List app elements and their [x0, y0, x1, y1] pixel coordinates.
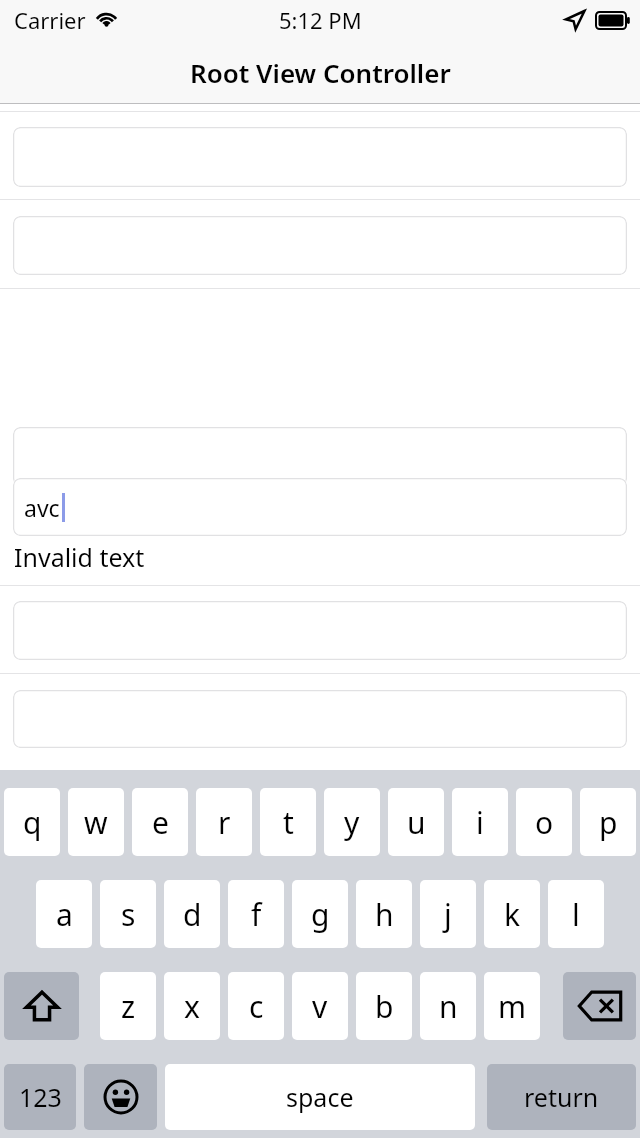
- staticText: i: [476, 802, 484, 843]
- staticText: space: [286, 1080, 354, 1114]
- button[interactable]: [13, 690, 627, 748]
- button[interactable]: r: [196, 788, 252, 856]
- button[interactable]: space: [165, 1064, 475, 1130]
- button[interactable]: [13, 216, 627, 275]
- button[interactable]: return: [487, 1064, 636, 1130]
- staticText: g: [311, 894, 330, 935]
- staticText: c: [249, 986, 264, 1027]
- button[interactable]: j: [420, 880, 476, 948]
- staticText: Root View Controller: [190, 55, 451, 90]
- staticText: 123: [19, 1080, 62, 1114]
- button[interactable]: f: [228, 880, 284, 948]
- button[interactable]: c: [228, 972, 284, 1040]
- button[interactable]: n: [420, 972, 476, 1040]
- button[interactable]: 123: [4, 1064, 76, 1130]
- staticText: d: [183, 894, 202, 935]
- staticText: v: [312, 986, 328, 1027]
- staticText: k: [504, 894, 521, 935]
- staticText: h: [375, 894, 394, 935]
- staticText: b: [375, 986, 394, 1027]
- button[interactable]: t: [260, 788, 316, 856]
- staticText: o: [535, 802, 554, 843]
- button[interactable]: [13, 601, 627, 660]
- button[interactable]: k: [484, 880, 540, 948]
- button[interactable]: m: [484, 972, 540, 1040]
- button[interactable]: w: [68, 788, 124, 856]
- button[interactable]: [13, 127, 627, 187]
- staticText: Invalid text: [14, 540, 145, 574]
- button[interactable]: avc: [13, 478, 627, 536]
- button[interactable]: y: [324, 788, 380, 856]
- button[interactable]: u: [388, 788, 444, 856]
- staticText: p: [599, 802, 618, 843]
- button[interactable]: x: [164, 972, 220, 1040]
- staticText: w: [84, 802, 108, 843]
- button[interactable]: i: [452, 788, 508, 856]
- button[interactable]: z: [100, 972, 156, 1040]
- button[interactable]: l: [548, 880, 604, 948]
- staticText: e: [152, 802, 169, 843]
- button[interactable]: b: [356, 972, 412, 1040]
- staticText: avc: [24, 492, 60, 523]
- staticText: y: [344, 802, 360, 843]
- button[interactable]: Emoji: [84, 1064, 157, 1130]
- staticText: l: [572, 894, 580, 935]
- staticText: a: [56, 894, 73, 935]
- button[interactable]: h: [356, 880, 412, 948]
- staticText: x: [184, 986, 200, 1027]
- staticText: s: [121, 894, 136, 935]
- staticText: j: [444, 894, 452, 935]
- staticText: Carrier: [14, 5, 86, 35]
- button[interactable]: d: [164, 880, 220, 948]
- button[interactable]: p: [580, 788, 636, 856]
- button[interactable]: q: [4, 788, 60, 856]
- button[interactable]: g: [292, 880, 348, 948]
- button[interactable]: s: [100, 880, 156, 948]
- staticText: 5:12 PM: [279, 5, 362, 35]
- staticText: n: [439, 986, 458, 1027]
- button[interactable]: a: [36, 880, 92, 948]
- button[interactable]: Shift: [4, 972, 79, 1040]
- staticText: m: [498, 986, 527, 1027]
- staticText: z: [121, 986, 136, 1027]
- staticText: q: [23, 802, 42, 843]
- staticText: u: [407, 802, 426, 843]
- button[interactable]: v: [292, 972, 348, 1040]
- button[interactable]: Backspace: [563, 972, 636, 1040]
- button[interactable]: o: [516, 788, 572, 856]
- staticText: f: [251, 894, 262, 935]
- staticText: r: [218, 802, 231, 843]
- button[interactable]: [13, 427, 627, 486]
- staticText: t: [283, 802, 294, 843]
- staticText: return: [524, 1080, 599, 1114]
- button[interactable]: e: [132, 788, 188, 856]
